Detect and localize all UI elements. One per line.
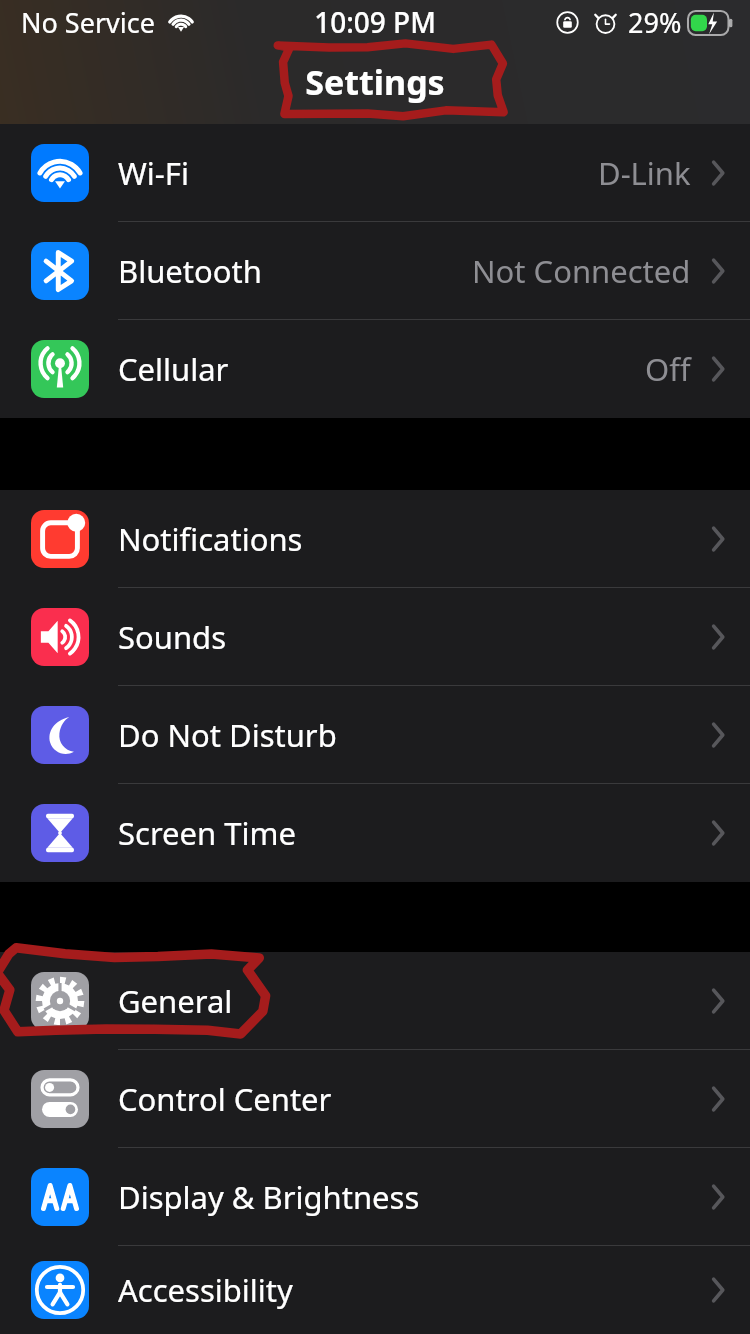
staticText: Display & Brightness	[118, 1176, 420, 1218]
staticText: Screen Time	[118, 812, 296, 854]
staticText: Wi-Fi	[118, 152, 189, 194]
staticText: Off	[645, 348, 691, 390]
staticText: Sounds	[118, 616, 227, 658]
button[interactable]: General	[0, 952, 750, 1050]
staticText: Not Connected	[472, 250, 691, 292]
staticText: 29%	[628, 4, 682, 41]
staticText: Bluetooth	[118, 250, 262, 292]
button[interactable]: Notifications	[0, 490, 750, 588]
button[interactable]: Screen Time	[0, 784, 750, 882]
staticText: Control Center	[118, 1078, 332, 1120]
button[interactable]: Bluetooth	[0, 222, 750, 320]
button[interactable]: Do Not Disturb	[0, 686, 750, 784]
button[interactable]: Wi-Fi	[0, 124, 750, 222]
button[interactable]: Cellular	[0, 320, 750, 418]
staticText: General	[118, 980, 233, 1022]
button[interactable]: Display & Brightness	[0, 1148, 750, 1246]
button[interactable]: Accessibility	[0, 1246, 750, 1334]
button[interactable]: Sounds	[0, 588, 750, 686]
staticText: Settings	[305, 59, 445, 105]
staticText: Notifications	[118, 518, 303, 560]
staticText: Do Not Disturb	[118, 714, 337, 756]
staticText: D-Link	[598, 152, 691, 194]
button[interactable]: Control Center	[0, 1050, 750, 1148]
staticText: Accessibility	[118, 1269, 293, 1311]
staticText: No Service	[21, 4, 155, 41]
staticText: 10:09 PM	[314, 3, 436, 41]
staticText: Cellular	[118, 348, 229, 390]
